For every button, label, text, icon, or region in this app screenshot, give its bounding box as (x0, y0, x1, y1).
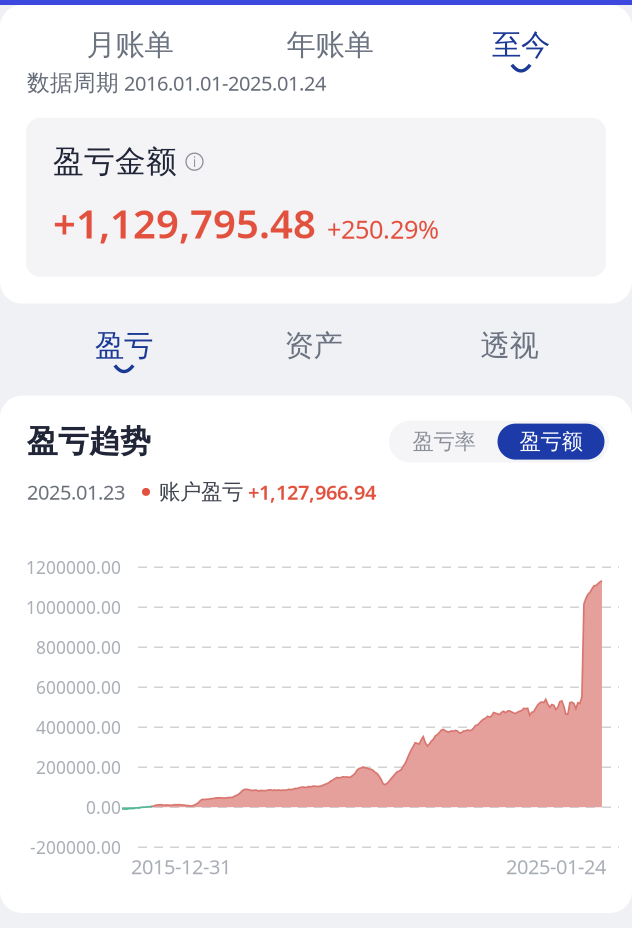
staticText: 盈亏 (95, 328, 153, 364)
staticText: +1,129,795.48 (53, 196, 316, 250)
staticText: 400000.00 (36, 716, 121, 739)
staticText: 透视 (480, 328, 538, 364)
button[interactable]: 年账单 (195, 27, 465, 63)
staticText: 2025-01-24 (506, 853, 606, 880)
staticText: 盈亏额 (519, 428, 582, 455)
staticText: 资产 (284, 328, 342, 364)
staticText: 盈亏趋势 (27, 423, 151, 460)
staticText: 600000.00 (36, 676, 121, 699)
staticText: 账户盈亏 (159, 479, 243, 505)
staticText: 至今 (492, 27, 550, 63)
staticText: 盈亏金额 (53, 143, 177, 180)
staticText: 1000000.00 (26, 596, 121, 619)
staticText: 800000.00 (36, 636, 121, 659)
staticText: 2015-12-31 (131, 853, 231, 880)
staticText: 月账单 (86, 27, 173, 63)
staticText: +1,127,966.94 (248, 479, 376, 505)
staticText: 2025.01.23 (27, 479, 125, 505)
staticText: i (192, 152, 196, 171)
staticText: 200000.00 (36, 756, 121, 779)
staticText: 数据周期 (27, 69, 119, 97)
button[interactable]: 盈亏额 (497, 424, 604, 460)
button[interactable]: 盈亏率 (390, 421, 497, 462)
staticText: 年账单 (286, 27, 373, 63)
button[interactable]: 透视 (441, 328, 578, 364)
staticText: 0.00 (86, 796, 121, 819)
button[interactable]: 月账单 (65, 27, 195, 63)
staticText: 盈亏率 (412, 428, 475, 455)
staticText: -200000.00 (30, 836, 121, 859)
button[interactable]: 盈亏 (62, 328, 186, 364)
button[interactable]: 至今 (465, 27, 577, 63)
staticText: +250.29% (327, 212, 439, 246)
staticText: 1200000.00 (26, 556, 121, 579)
button[interactable]: 资产 (186, 328, 441, 364)
staticText: 2016.01.01-2025.01.24 (124, 70, 326, 96)
